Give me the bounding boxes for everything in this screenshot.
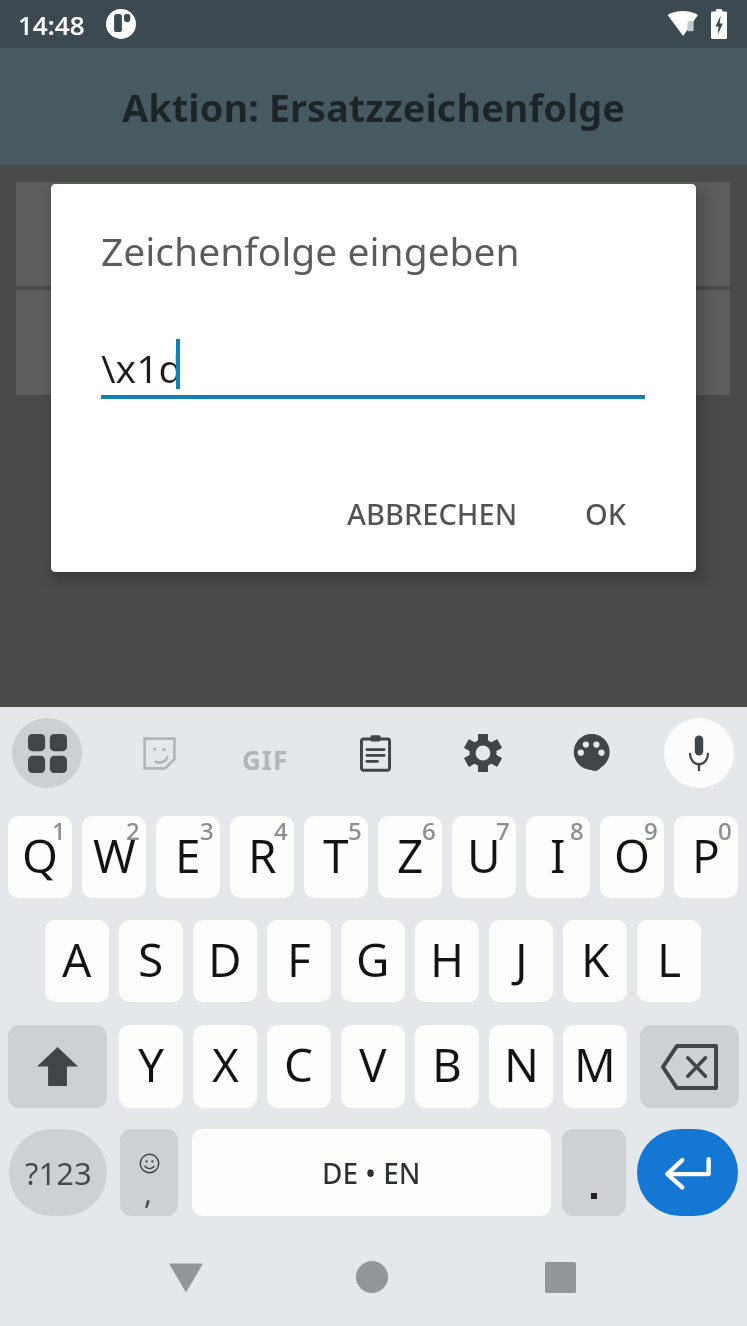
staticText: T [323,824,349,887]
button[interactable]: OK [571,480,641,547]
staticText: C [284,1033,314,1096]
button[interactable]: I [526,816,590,898]
staticText: DE • EN [322,1154,421,1192]
button[interactable]: T [304,816,368,898]
staticText: 6 [422,816,436,847]
staticText: E [175,824,201,887]
button[interactable]: S [119,920,183,1002]
staticText: 1 [52,816,66,847]
staticText: GIF [242,742,289,777]
button[interactable]: Settings [448,718,518,788]
button[interactable]: Voice input [664,718,734,788]
staticText: L [657,928,682,991]
staticText: X [212,1033,239,1096]
button[interactable] [562,1129,626,1216]
staticText: J [515,928,528,991]
button[interactable]: Enter [637,1129,738,1216]
button[interactable]: Back [130,1228,242,1326]
staticText: Q [22,824,58,887]
button[interactable]: A [45,920,109,1002]
button[interactable]: Theme [557,718,627,788]
staticText: P [692,824,720,887]
button[interactable]: V [341,1025,405,1108]
staticText: H [430,928,465,991]
button[interactable]: H [415,920,479,1002]
button[interactable]: ABBRECHEN [333,480,532,547]
staticText: V [359,1033,387,1096]
button[interactable]: P [674,816,738,898]
staticText: 0 [718,816,732,847]
button[interactable]: M [563,1025,627,1108]
staticText: M [574,1033,616,1096]
button[interactable]: Clipboard [340,718,410,788]
staticText: B [432,1033,462,1096]
button[interactable]: C [267,1025,331,1108]
staticText: \x1d [101,341,183,394]
staticText: 5 [348,816,362,847]
button[interactable]: GIF [233,727,297,791]
staticText: K [581,928,610,991]
button[interactable]: Home [316,1228,428,1326]
staticText: 4 [274,816,288,847]
button[interactable]: Q [8,816,72,898]
button[interactable]: B [415,1025,479,1108]
staticText: OK [585,494,627,533]
staticText: Zeichenfolge eingeben [101,224,520,277]
staticText: W [93,824,136,887]
button[interactable]: X [193,1025,257,1108]
staticText: 9 [644,816,658,847]
staticText: R [248,824,277,887]
staticText: Aktion: Ersatzzeichenfolge [122,81,626,133]
button[interactable]: Emoji and comma [120,1129,178,1216]
button[interactable]: Shift [8,1025,107,1108]
button[interactable]: DE • EN [192,1129,551,1216]
button[interactable]: Apps [12,718,82,788]
staticText: U [467,824,501,887]
button[interactable]: J [489,920,553,1002]
staticText: Y [138,1033,165,1096]
staticText: 2 [126,816,140,847]
button[interactable]: D [193,920,257,1002]
staticText: ?123 [25,1152,92,1194]
button[interactable]: O [600,816,664,898]
button[interactable]: U [452,816,516,898]
button[interactable]: Backspace [640,1025,739,1108]
staticText: ABBRECHEN [347,494,518,533]
button[interactable]: Y [119,1025,183,1108]
button[interactable]: Z [378,816,442,898]
staticText: , [144,1172,153,1213]
button[interactable]: Sticker [124,718,194,788]
staticText: 8 [570,816,584,847]
staticText: 3 [200,816,214,847]
staticText: G [356,928,390,991]
button[interactable]: E [156,816,220,898]
button[interactable]: G [341,920,405,1002]
staticText: F [287,928,311,991]
button[interactable]: N [489,1025,553,1108]
staticText: N [504,1033,539,1096]
staticText: I [550,824,566,887]
button[interactable]: L [637,920,701,1002]
button[interactable]: ?123 [9,1129,107,1216]
staticText: A [62,928,92,991]
button[interactable]: R [230,816,294,898]
staticText: S [138,928,164,991]
staticText: 14:48 [18,7,85,42]
staticText: D [208,928,242,991]
button[interactable]: W [82,816,146,898]
staticText: Z [397,824,424,887]
button[interactable]: F [267,920,331,1002]
button[interactable]: K [563,920,627,1002]
staticText: 7 [496,816,510,847]
staticText: O [614,824,650,887]
button[interactable]: Recents [504,1228,616,1326]
